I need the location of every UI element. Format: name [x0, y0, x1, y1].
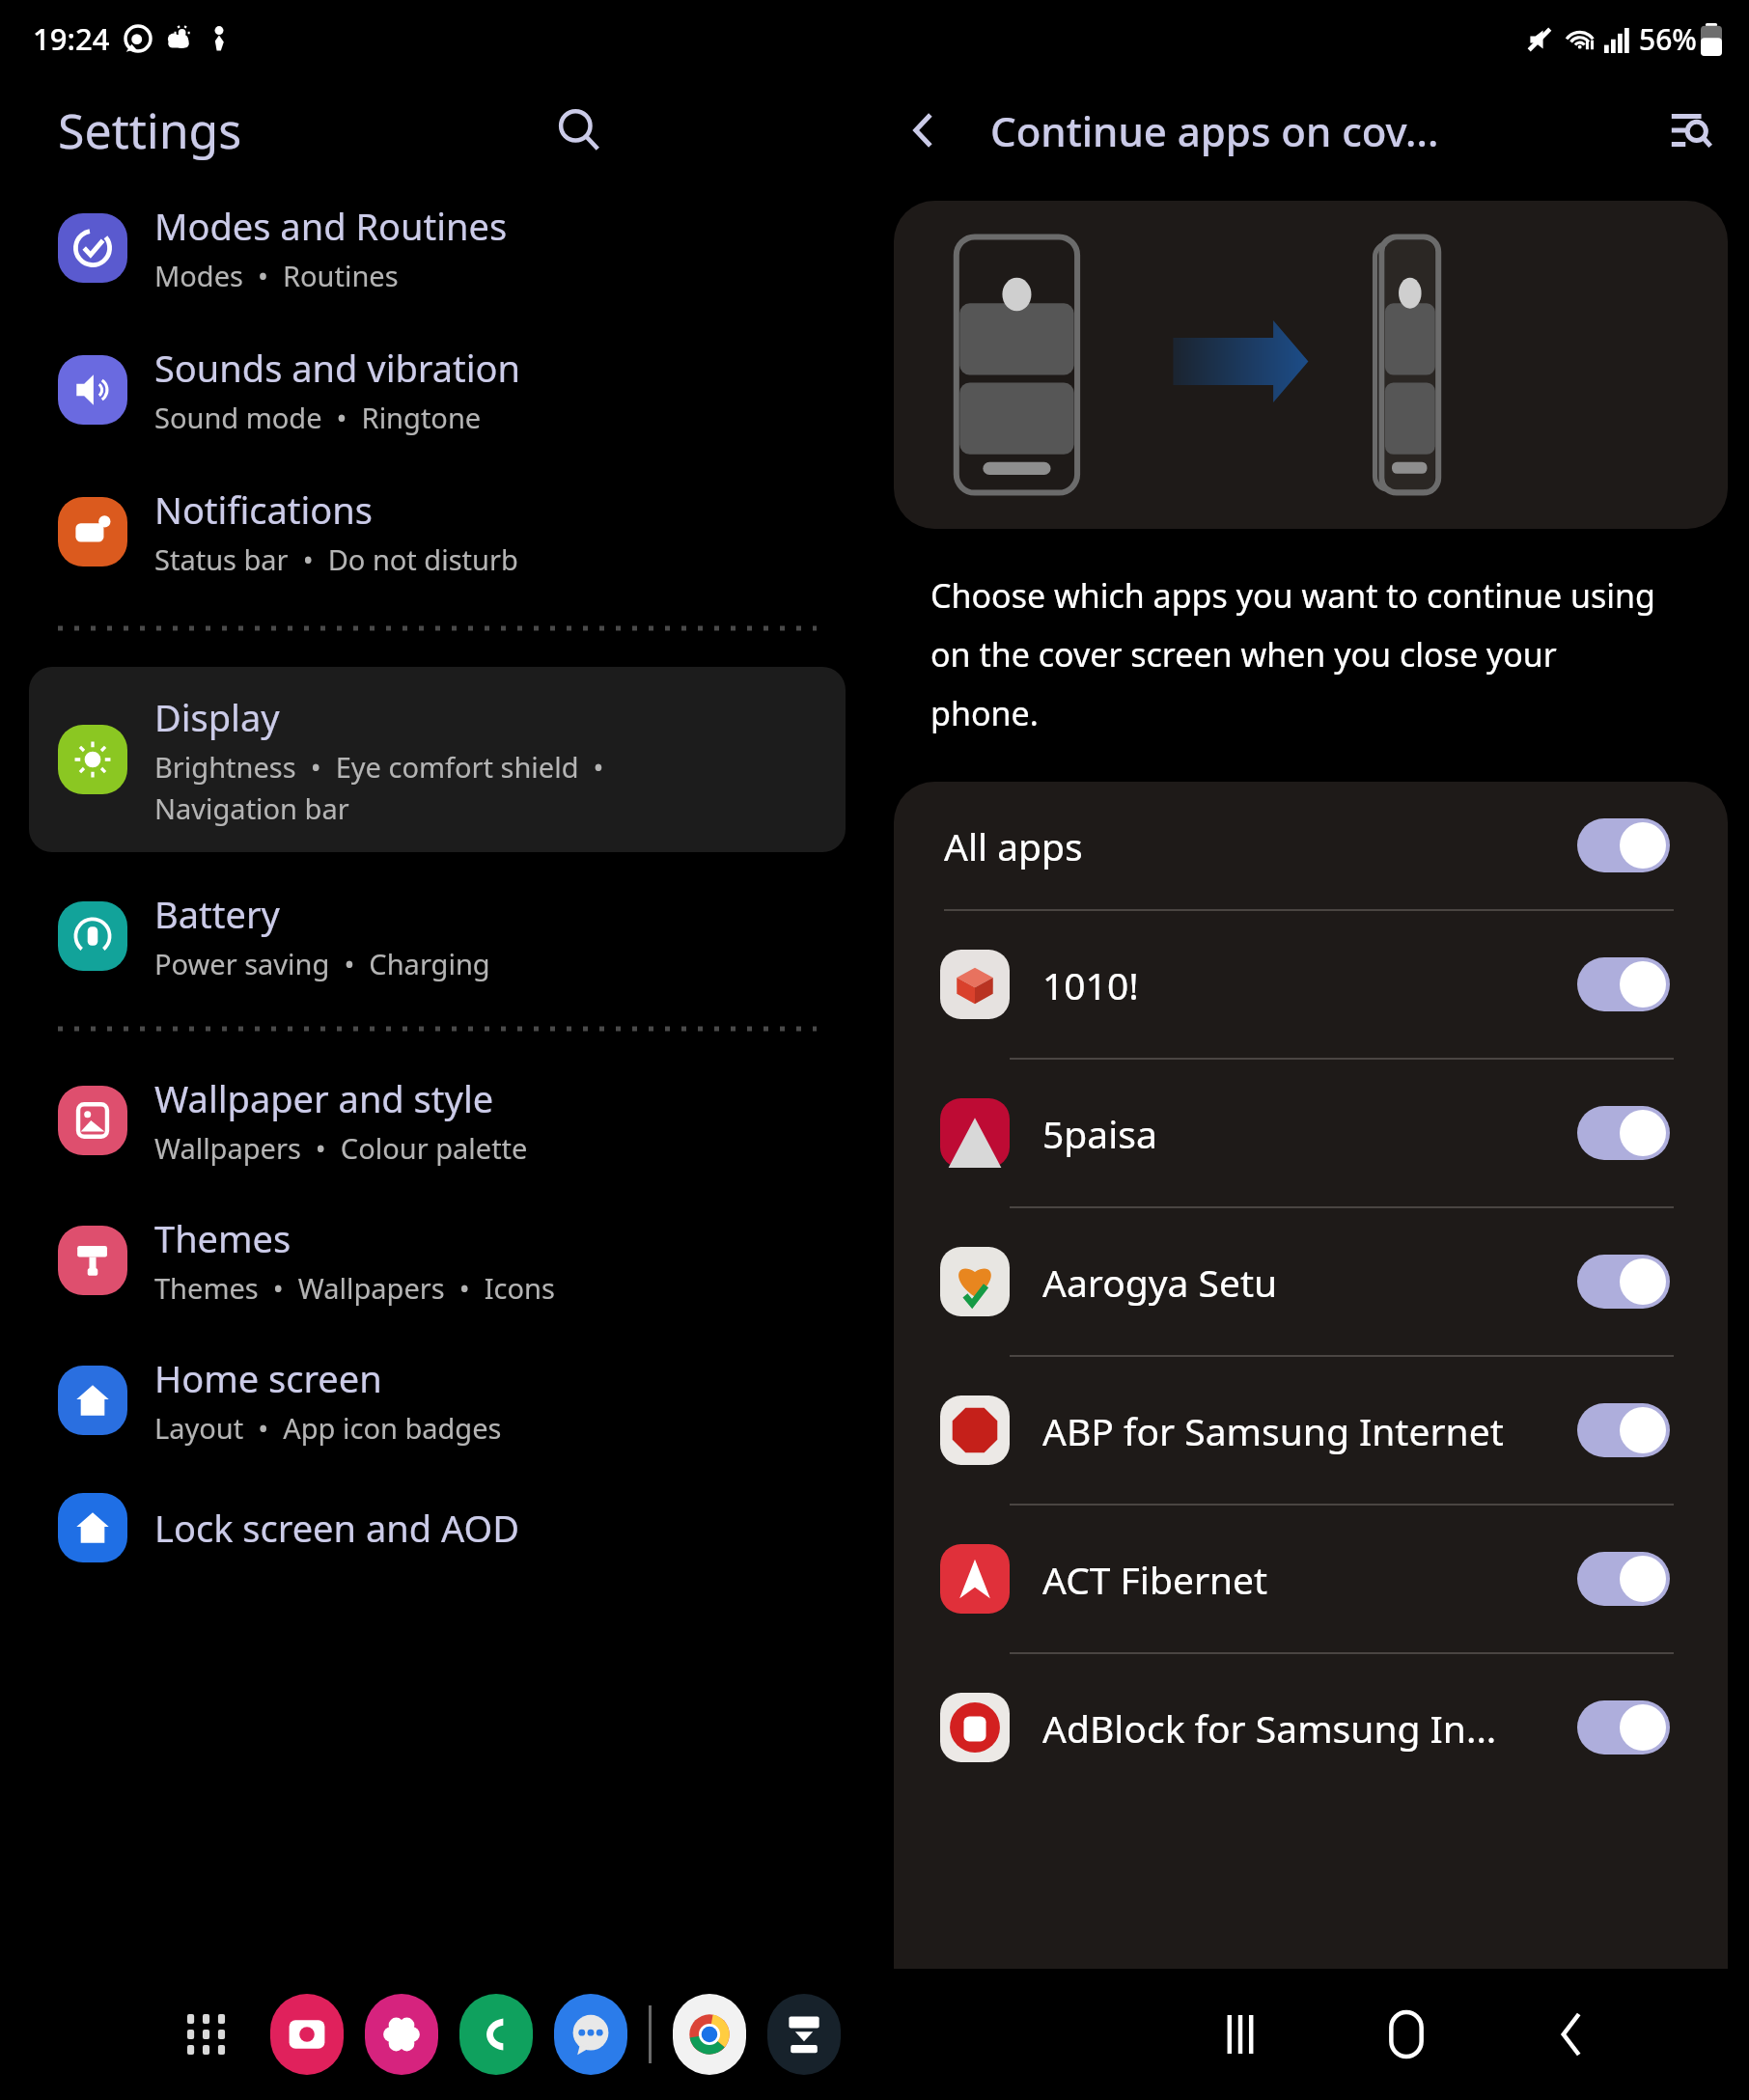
- staticText: Continue apps on cov...: [990, 103, 1439, 158]
- button[interactable]: Home: [1365, 1993, 1448, 2076]
- button[interactable]: camera: [270, 1994, 344, 2075]
- button[interactable]: msg: [554, 1994, 627, 2075]
- staticText: Themes • Wallpapers • Icons: [154, 1269, 555, 1307]
- staticText: Modes and Routines: [154, 201, 508, 251]
- staticText: Notifications: [154, 484, 374, 535]
- staticText: Wallpapers • Colour palette: [154, 1129, 528, 1167]
- button[interactable]: Display: [29, 667, 846, 852]
- staticText: All apps: [944, 820, 1083, 871]
- staticText: 1010!: [1042, 959, 1139, 1010]
- button[interactable]: Toggle on: [1577, 1403, 1670, 1457]
- button[interactable]: Toggle on: [1577, 1552, 1670, 1606]
- button[interactable]: Wallpaper and style: [29, 1073, 846, 1167]
- staticText: Home screen: [154, 1353, 382, 1403]
- button[interactable]: Toggle on: [1577, 818, 1670, 872]
- button[interactable]: phone: [459, 1994, 533, 2075]
- button[interactable]: 1010!: [894, 911, 1728, 1058]
- button[interactable]: chrome: [673, 1994, 746, 2075]
- button[interactable]: Search settings: [544, 96, 614, 165]
- button[interactable]: Sounds and vibration: [29, 343, 846, 436]
- button[interactable]: Battery: [29, 889, 846, 982]
- button[interactable]: Lock screen and AOD: [29, 1493, 846, 1562]
- button[interactable]: Search in settings: [1654, 94, 1728, 167]
- staticText: Layout • App icon badges: [154, 1409, 502, 1447]
- button[interactable]: Back: [888, 94, 961, 167]
- staticText: 56%: [1639, 19, 1697, 59]
- button[interactable]: Toggle on: [1577, 1106, 1670, 1160]
- button[interactable]: All apps: [174, 2001, 241, 2068]
- staticText: Choose which apps you want to continue u…: [930, 573, 1662, 735]
- staticText: Lock screen and AOD: [154, 1503, 519, 1553]
- staticText: Modes • Routines: [154, 257, 399, 294]
- staticText: 19:24: [33, 18, 110, 59]
- button[interactable]: AdBlock for Samsung In...: [894, 1654, 1728, 1801]
- staticText: ACT Fibernet: [1042, 1554, 1268, 1605]
- button[interactable]: Toggle on: [1577, 1255, 1670, 1309]
- staticText: Aarogya Setu: [1042, 1257, 1278, 1308]
- staticText: Status bar • Do not disturb: [154, 540, 518, 578]
- staticText: Sound mode • Ringtone: [154, 399, 482, 436]
- staticText: Settings: [58, 97, 242, 163]
- button[interactable]: flower: [365, 1994, 438, 2075]
- button[interactable]: 5paisa: [894, 1060, 1728, 1206]
- button[interactable]: Themes: [29, 1213, 846, 1307]
- button[interactable]: Home screen: [29, 1353, 846, 1447]
- button[interactable]: Modes and Routines: [29, 201, 846, 294]
- staticText: Display: [154, 692, 280, 742]
- staticText: Wallpaper and style: [154, 1073, 494, 1123]
- button[interactable]: Recents: [1199, 1993, 1282, 2076]
- button[interactable]: Aarogya Setu: [894, 1208, 1728, 1355]
- staticText: Battery: [154, 889, 280, 939]
- button[interactable]: ABP for Samsung Internet: [894, 1357, 1728, 1504]
- staticText: AdBlock for Samsung In...: [1042, 1702, 1497, 1754]
- button[interactable]: Notifications: [29, 484, 846, 578]
- staticText: Brightness • Eye comfort shield •: [154, 748, 604, 786]
- button[interactable]: ACT Fibernet: [894, 1506, 1728, 1652]
- button[interactable]: Back: [1531, 1993, 1614, 2076]
- button[interactable]: Toggle on: [1577, 957, 1670, 1011]
- button[interactable]: Toggle on: [1577, 1700, 1670, 1755]
- button[interactable]: All apps: [894, 782, 1728, 909]
- staticText: Power saving • Charging: [154, 945, 490, 982]
- button[interactable]: epic: [767, 1994, 841, 2075]
- staticText: Sounds and vibration: [154, 343, 521, 393]
- staticText: Navigation bar: [154, 789, 349, 827]
- staticText: Themes: [154, 1213, 291, 1263]
- staticText: ABP for Samsung Internet: [1042, 1405, 1504, 1456]
- staticText: 5paisa: [1042, 1108, 1157, 1159]
